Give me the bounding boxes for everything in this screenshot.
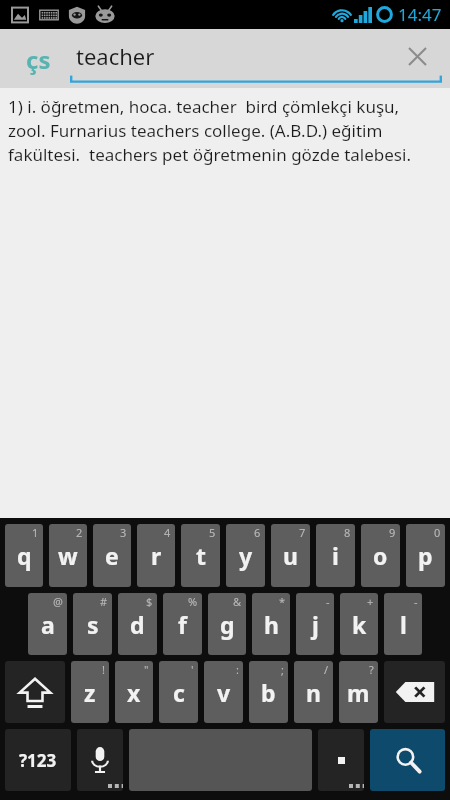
staticText: 1) i. öğretmen, hoca. teacher bird çömle…: [8, 95, 434, 166]
button[interactable]: j: [296, 593, 334, 655]
staticText: ?: [369, 662, 374, 677]
staticText: t: [196, 540, 206, 571]
button[interactable]: a: [28, 593, 67, 655]
staticText: 1: [32, 525, 39, 540]
button[interactable]: Search: [370, 729, 445, 791]
button[interactable]: v: [204, 661, 243, 723]
staticText: 3: [120, 525, 127, 540]
staticText: ": [144, 662, 149, 677]
staticText: d: [130, 609, 145, 640]
staticText: teacher: [76, 41, 155, 71]
button[interactable]: g: [208, 593, 246, 655]
staticText: 8: [344, 525, 351, 540]
button[interactable]: Clear search: [398, 40, 436, 78]
staticText: &: [233, 594, 242, 609]
staticText: 4: [164, 525, 171, 540]
staticText: b: [261, 677, 276, 708]
button[interactable]: n: [294, 661, 333, 723]
button[interactable]: z: [71, 661, 109, 723]
button[interactable]: teacher: [76, 36, 390, 81]
button[interactable]: Shift: [5, 661, 65, 723]
button[interactable]: App logo: [18, 39, 58, 79]
button[interactable]: p: [406, 524, 445, 587]
button[interactable]: d: [118, 593, 157, 655]
staticText: 7: [299, 525, 306, 540]
staticText: -: [414, 594, 418, 609]
staticText: s: [87, 609, 99, 640]
button[interactable]: Voice input: [77, 729, 123, 791]
staticText: ': [191, 662, 194, 677]
staticText: l: [400, 609, 407, 640]
button[interactable]: b: [249, 661, 288, 723]
button[interactable]: f: [163, 593, 202, 655]
staticText: z: [84, 677, 96, 708]
staticText: #: [100, 594, 108, 609]
staticText: j: [312, 609, 319, 640]
staticText: 2: [76, 525, 83, 540]
button[interactable]: e: [93, 524, 131, 587]
button[interactable]: r: [137, 524, 175, 587]
button[interactable]: k: [340, 593, 378, 655]
staticText: r: [151, 540, 162, 571]
button[interactable]: l: [384, 593, 422, 655]
staticText: i: [332, 540, 339, 571]
staticText: a: [41, 609, 55, 640]
staticText: /: [324, 662, 329, 677]
button[interactable]: o: [361, 524, 400, 587]
button[interactable]: q: [5, 524, 43, 587]
staticText: q: [17, 540, 32, 571]
button[interactable]: y: [226, 524, 265, 587]
staticText: ?123: [19, 749, 57, 772]
button[interactable]: x: [115, 661, 153, 723]
staticText: f: [178, 609, 187, 640]
staticText: 9: [389, 525, 396, 540]
button[interactable]: i: [316, 524, 355, 587]
staticText: y: [239, 540, 253, 571]
staticText: m: [347, 677, 370, 708]
staticText: k: [352, 609, 367, 640]
staticText: :: [236, 662, 239, 677]
staticText: 5: [209, 525, 216, 540]
button[interactable]: h: [252, 593, 290, 655]
staticText: 14:47: [398, 3, 442, 26]
staticText: c: [173, 677, 185, 708]
staticText: e: [105, 540, 119, 571]
staticText: h: [264, 609, 279, 640]
button[interactable]: w: [49, 524, 87, 587]
staticText: v: [217, 677, 231, 708]
staticText: ;: [281, 662, 284, 677]
staticText: o: [373, 540, 388, 571]
staticText: %: [188, 594, 198, 609]
button[interactable]: Delete: [384, 661, 445, 723]
staticText: w: [58, 540, 78, 571]
staticText: g: [220, 609, 235, 640]
button[interactable]: s: [73, 593, 112, 655]
staticText: *: [279, 594, 286, 609]
staticText: @: [53, 594, 63, 609]
staticText: n: [306, 677, 321, 708]
staticText: -: [326, 594, 330, 609]
staticText: x: [127, 677, 141, 708]
staticText: u: [283, 540, 298, 571]
staticText: p: [418, 540, 433, 571]
button[interactable]: Period: [318, 729, 364, 791]
button[interactable]: t: [181, 524, 220, 587]
button[interactable]: u: [271, 524, 310, 587]
staticText: 0: [434, 525, 441, 540]
staticText: !: [102, 662, 105, 677]
staticText: $: [146, 594, 153, 609]
staticText: 6: [254, 525, 261, 540]
staticText: +: [367, 594, 374, 609]
button[interactable]: m: [339, 661, 378, 723]
staticText: çs: [26, 43, 51, 76]
button[interactable]: c: [159, 661, 198, 723]
button[interactable]: ?123: [5, 729, 71, 791]
